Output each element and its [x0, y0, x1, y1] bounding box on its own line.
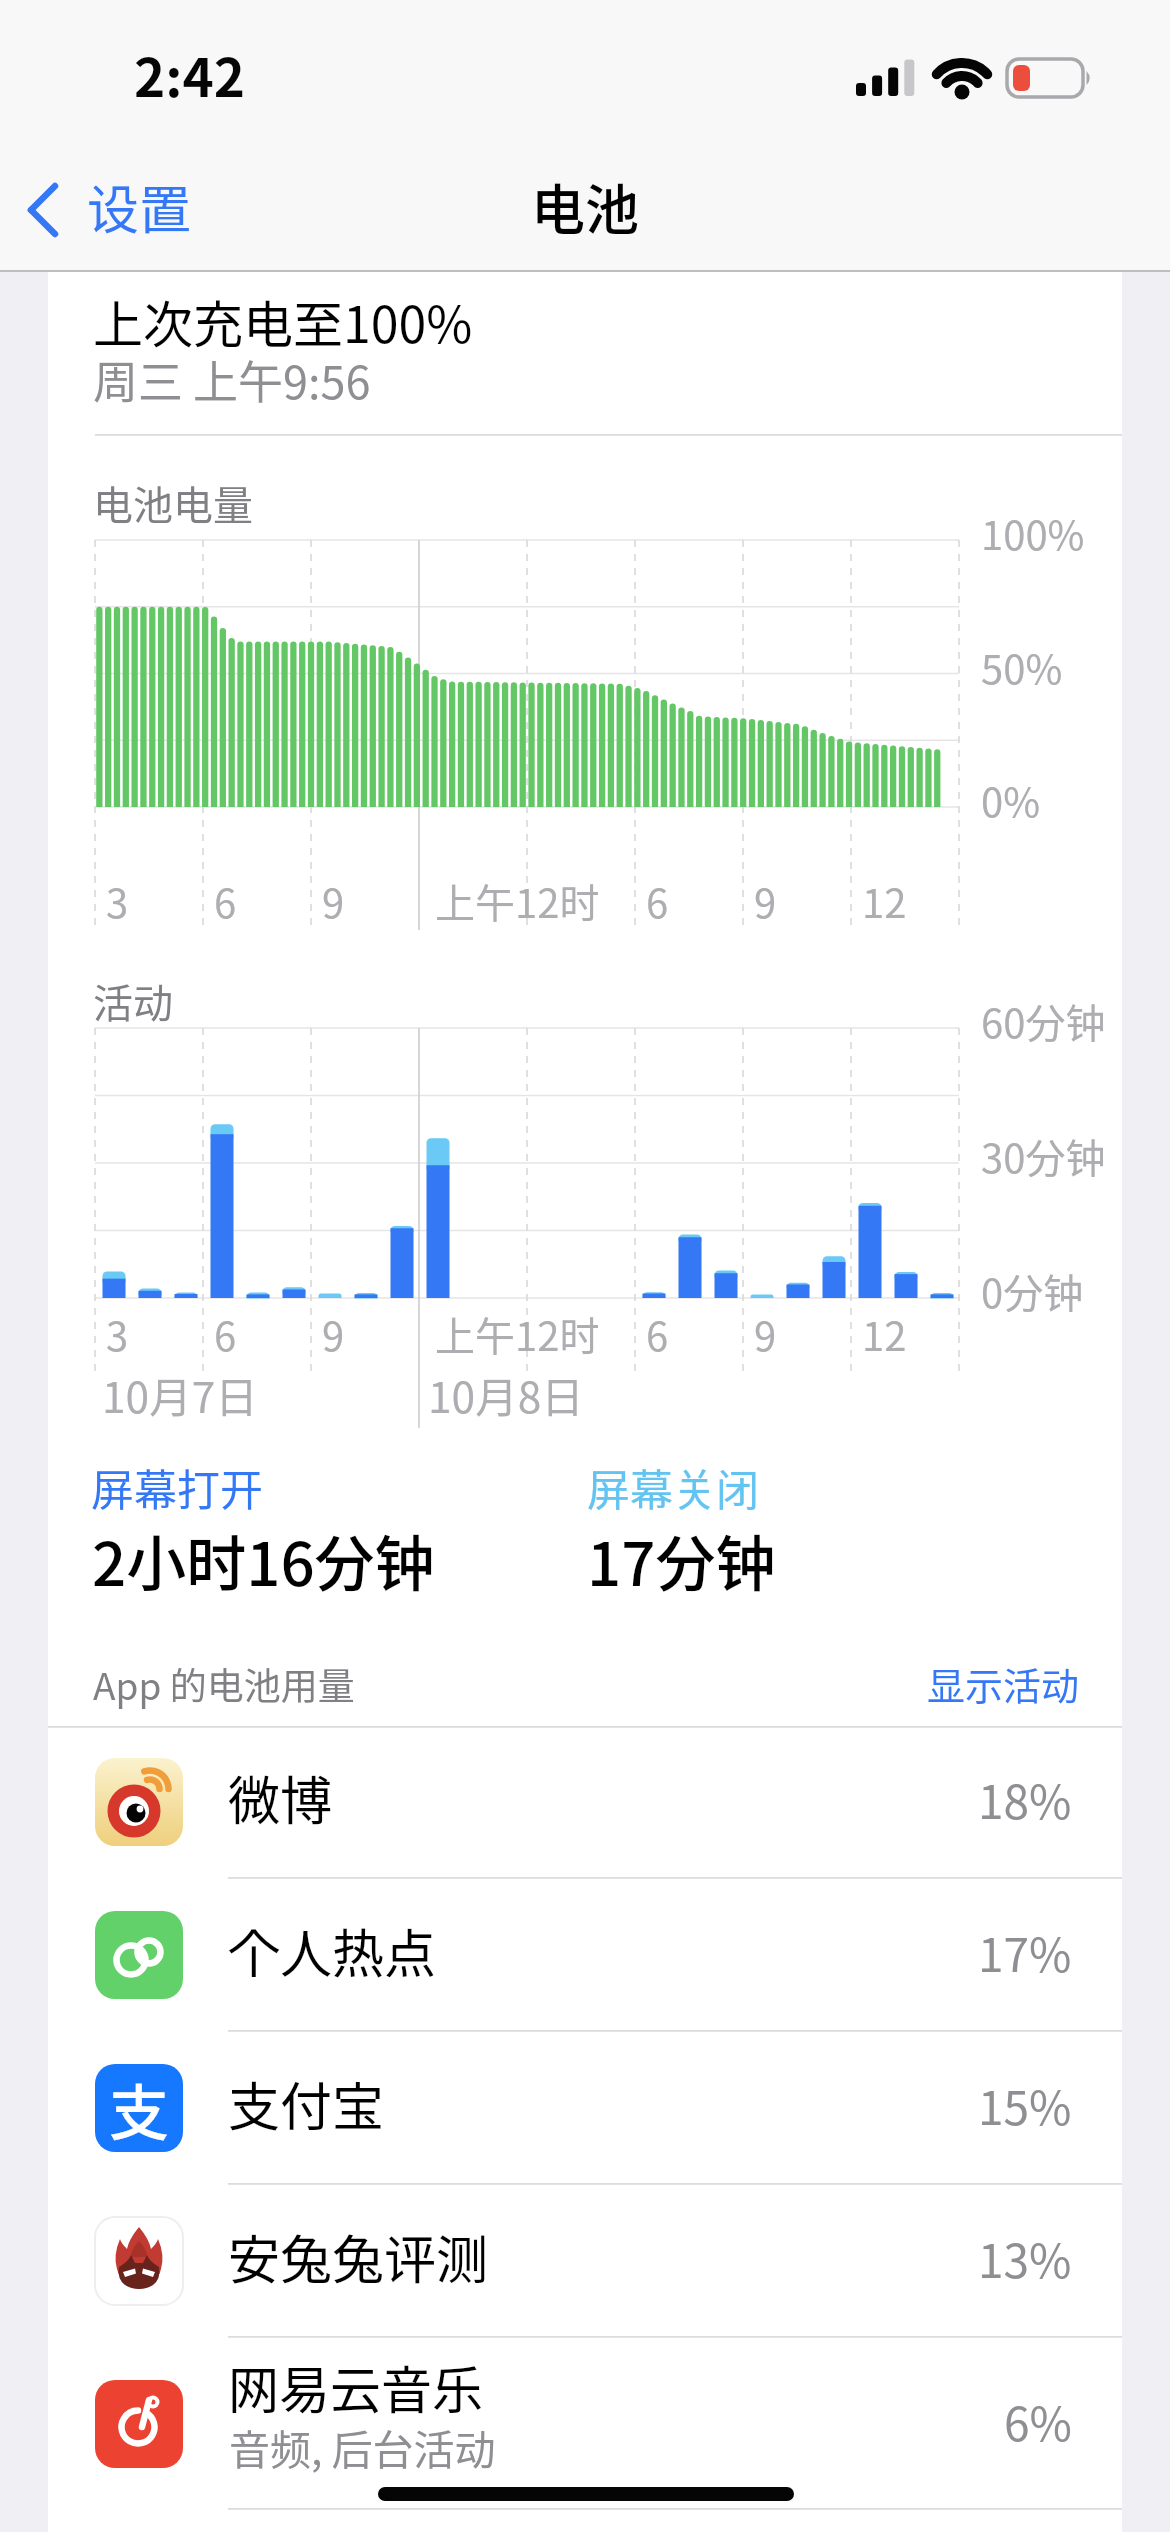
staticText: 活动 — [93, 972, 173, 1030]
staticText: 100% — [981, 504, 1085, 562]
staticText: 10月8日 — [428, 1364, 584, 1426]
staticText: 屏幕关闭 — [587, 1456, 759, 1518]
staticText: 0% — [981, 771, 1041, 829]
staticText: 2:42 — [134, 36, 246, 113]
staticText: 50% — [981, 638, 1063, 696]
staticText: 9 — [322, 1305, 345, 1363]
staticText: 电池电量 — [93, 474, 253, 532]
staticText: 30分钟 — [981, 1127, 1106, 1185]
staticText: 支 — [109, 2065, 169, 2152]
staticText: 显示活动 — [927, 1656, 1080, 1711]
staticText: 9 — [754, 872, 777, 930]
staticText: 个人热点 — [228, 1913, 437, 1988]
staticText: 支付宝 — [228, 2066, 385, 2141]
staticText: 音频, 后台活动 — [229, 2417, 496, 2476]
button[interactable] — [48, 2337, 1122, 2489]
button[interactable] — [48, 1878, 1122, 2030]
staticText: 13% — [978, 2225, 1072, 2292]
staticText: 12 — [862, 1305, 907, 1363]
staticText: 上次充电至100% — [93, 285, 473, 357]
button[interactable] — [15, 175, 210, 245]
staticText: 2小时16分钟 — [92, 1516, 435, 1603]
staticText: 6 — [214, 1305, 237, 1363]
staticText: 9 — [322, 872, 345, 930]
staticText: 18% — [978, 1766, 1072, 1833]
staticText: 设置 — [87, 169, 192, 244]
staticText: 12 — [862, 872, 907, 930]
staticText: 17% — [978, 1919, 1072, 1986]
staticText: 电池 — [531, 167, 639, 245]
staticText: 微博 — [228, 1760, 333, 1835]
staticText: 屏幕打开 — [91, 1456, 263, 1518]
staticText: 60分钟 — [981, 992, 1106, 1050]
staticText: 3 — [106, 872, 129, 930]
button[interactable]: 显示活动 — [580, 1638, 1080, 1728]
staticText: 上午12时 — [435, 872, 600, 930]
staticText: 10月7日 — [102, 1364, 258, 1426]
button[interactable] — [48, 2184, 1122, 2336]
staticText: 6% — [1004, 2388, 1072, 2455]
staticText: 17分钟 — [587, 1516, 776, 1603]
staticText: 网易云音乐 — [228, 2350, 484, 2424]
button[interactable] — [48, 2031, 1122, 2183]
staticText: 6 — [646, 872, 669, 930]
staticText: 0分钟 — [981, 1262, 1084, 1320]
staticText: 安兔兔评测 — [228, 2219, 489, 2294]
button[interactable] — [48, 1728, 1122, 1880]
staticText: 周三 上午9:56 — [93, 347, 371, 412]
staticText: 9 — [754, 1305, 777, 1363]
staticText: 6 — [646, 1305, 669, 1363]
staticText: 3 — [106, 1305, 129, 1363]
staticText: 上午12时 — [435, 1305, 600, 1363]
staticText: 6 — [214, 872, 237, 930]
staticText: 15% — [978, 2072, 1072, 2139]
staticText: App 的电池用量 — [93, 1657, 355, 1711]
